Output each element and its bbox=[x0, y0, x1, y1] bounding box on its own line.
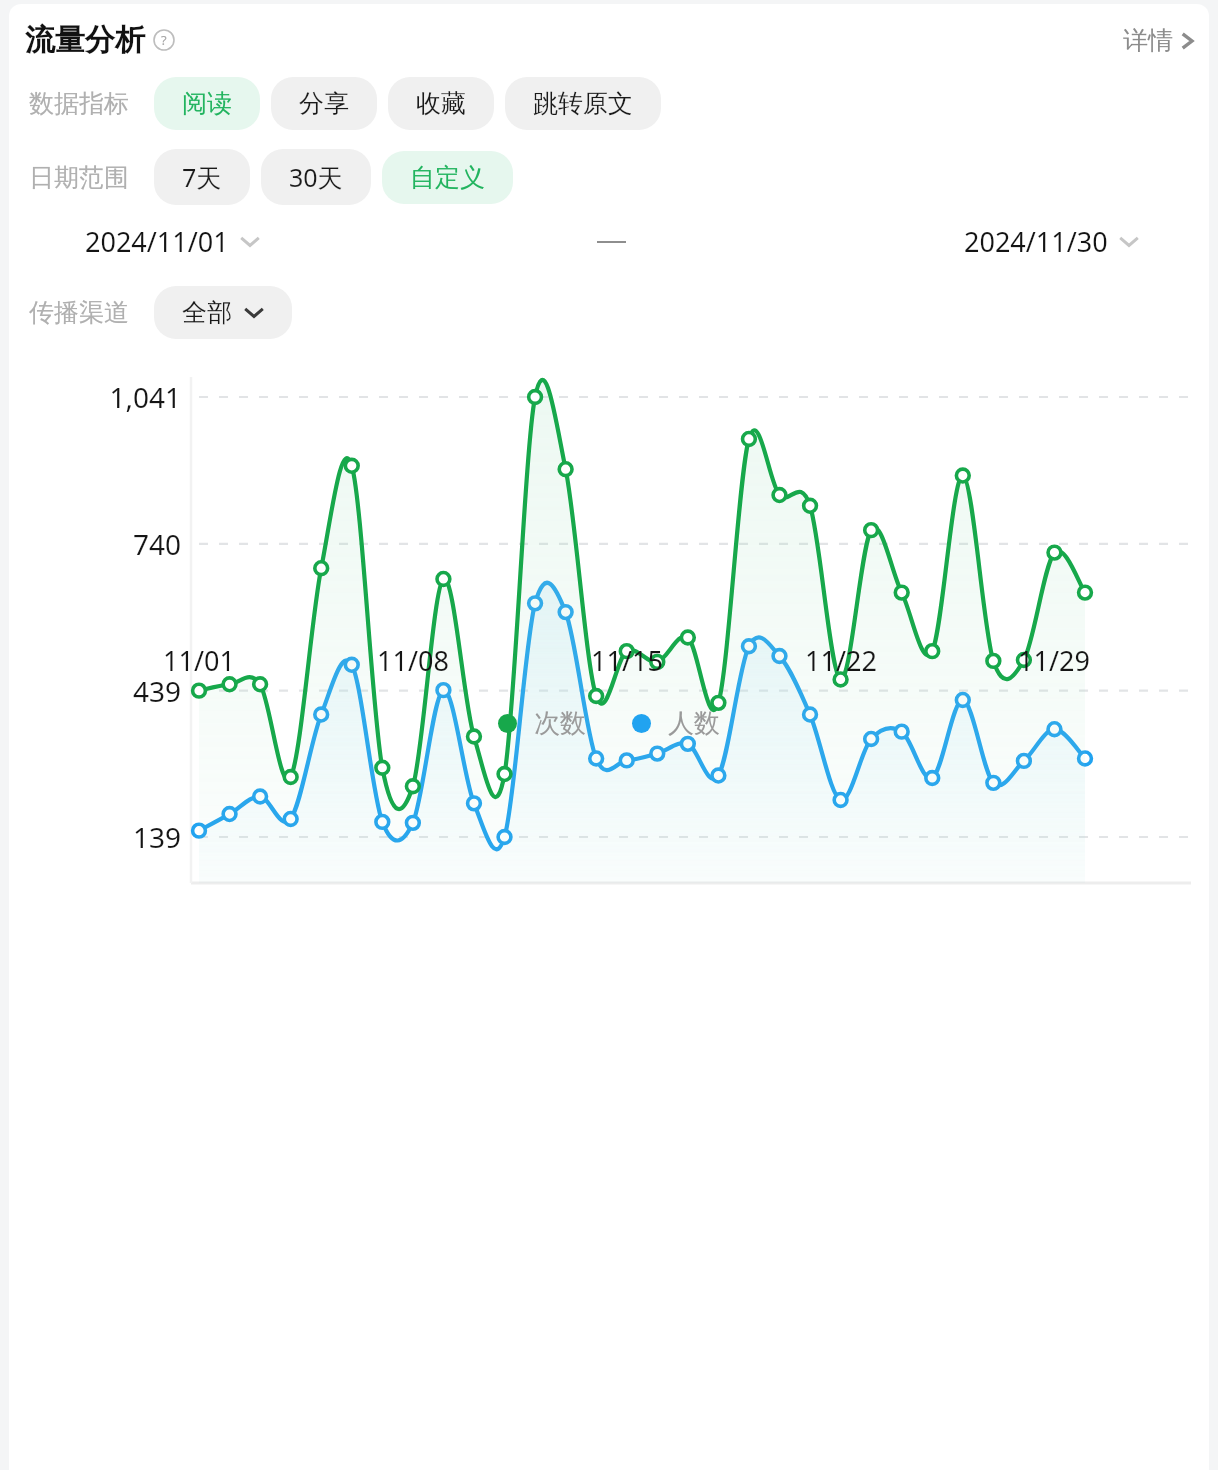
button[interactable]: 人数 bbox=[632, 707, 720, 740]
staticText: 11/29 bbox=[994, 642, 1114, 679]
staticText: 数据指标 bbox=[29, 88, 129, 119]
staticText: 11/22 bbox=[781, 642, 901, 679]
button[interactable]: 30天 bbox=[261, 149, 371, 205]
staticText: 全部 bbox=[182, 297, 232, 328]
button[interactable]: 自定义 bbox=[382, 151, 513, 204]
button[interactable]: 7天 bbox=[154, 149, 250, 205]
staticText: 740 bbox=[9, 525, 181, 563]
button[interactable]: 收藏 bbox=[388, 77, 494, 130]
staticText: 收藏 bbox=[416, 88, 466, 119]
staticText: 1,041 bbox=[9, 378, 181, 416]
staticText: 7天 bbox=[182, 160, 222, 194]
button[interactable]: 次数 bbox=[498, 707, 586, 740]
staticText: 人数 bbox=[668, 707, 720, 740]
button[interactable]: 2024/11/30 bbox=[964, 223, 1139, 260]
staticText: 2024/11/01 bbox=[85, 223, 229, 260]
button[interactable]: 跳转原文 bbox=[505, 77, 661, 130]
staticText: 自定义 bbox=[410, 162, 485, 193]
staticText: 30天 bbox=[289, 160, 343, 194]
button[interactable]: 2024/11/01 bbox=[85, 223, 260, 260]
staticText: 11/08 bbox=[353, 642, 473, 679]
staticText: 日期范围 bbox=[29, 162, 129, 193]
button[interactable]: 帮助 bbox=[153, 29, 175, 51]
staticText: 139 bbox=[9, 818, 181, 856]
staticText: 439 bbox=[9, 672, 181, 710]
staticText: 阅读 bbox=[182, 88, 232, 119]
button[interactable]: 阅读 bbox=[154, 77, 260, 130]
staticText: 2024/11/30 bbox=[964, 223, 1108, 260]
staticText: 11/15 bbox=[567, 642, 687, 679]
staticText: 详情 bbox=[1123, 25, 1173, 56]
staticText: 次数 bbox=[534, 707, 586, 740]
button[interactable]: 全部 bbox=[154, 286, 292, 339]
button[interactable]: 分享 bbox=[271, 77, 377, 130]
staticText: 传播渠道 bbox=[29, 297, 129, 328]
button[interactable]: 详情 bbox=[1123, 25, 1195, 56]
staticText: 流量分析 bbox=[25, 21, 145, 59]
staticText: 11/01 bbox=[139, 642, 259, 679]
staticText: 分享 bbox=[299, 88, 349, 119]
staticText: 跳转原文 bbox=[533, 88, 633, 119]
staticText: ? bbox=[161, 31, 167, 49]
